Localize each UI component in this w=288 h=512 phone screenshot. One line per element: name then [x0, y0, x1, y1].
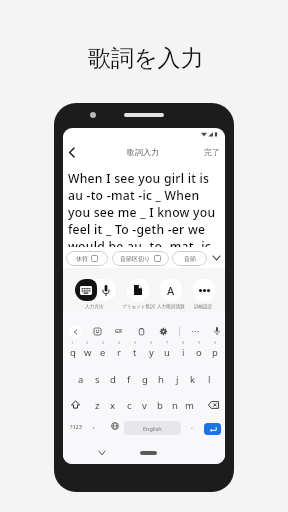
button[interactable]: 音節区切り [112, 251, 169, 266]
button[interactable]: 完了 [199, 143, 225, 161]
button[interactable]: Keyboard input [75, 279, 97, 301]
button[interactable]: m [182, 396, 197, 414]
button[interactable]: b [152, 396, 167, 414]
staticText: j [176, 373, 179, 386]
staticText: 6 [150, 340, 153, 345]
button[interactable]: l [201, 370, 217, 388]
button[interactable]: Enter [204, 423, 221, 435]
staticText: t [133, 346, 137, 359]
button[interactable]: k [185, 370, 201, 388]
staticText: k [190, 373, 196, 386]
staticText: 詳細設定 [194, 304, 213, 310]
staticText: 8 [182, 340, 185, 345]
staticText: A [167, 283, 175, 298]
button[interactable]: 1 [65, 340, 80, 361]
button[interactable]: 8 [175, 340, 191, 361]
button[interactable]: GIF [113, 326, 125, 336]
staticText: 3 [102, 340, 105, 345]
staticText: 2 [86, 340, 89, 345]
button[interactable]: 5 [127, 340, 143, 361]
button[interactable]: g [137, 370, 153, 388]
staticText: 入力歌詞清源 [157, 304, 185, 310]
staticText: l [208, 373, 211, 386]
button[interactable]: . [187, 420, 197, 434]
button[interactable]: j [169, 370, 185, 388]
button[interactable]: , [88, 420, 99, 432]
staticText: h [158, 373, 164, 386]
button[interactable]: English [124, 421, 181, 435]
button[interactable]: 休符 [66, 251, 108, 266]
staticText: a [78, 373, 84, 386]
button[interactable]: x [105, 396, 121, 414]
button[interactable]: 7 [159, 340, 175, 361]
button[interactable]: Change language [109, 420, 120, 432]
staticText: 完了 [204, 147, 220, 157]
button[interactable]: z [89, 396, 105, 414]
staticText: r [117, 346, 121, 359]
staticText: , [93, 421, 95, 431]
button[interactable]: 詳細設定 [193, 279, 215, 301]
button[interactable]: 2 [80, 340, 95, 361]
button[interactable]: Clipboard [135, 325, 148, 338]
button[interactable]: 音節 [172, 251, 207, 266]
staticText: 1 [71, 340, 74, 345]
staticText: 4 [118, 340, 121, 345]
staticText: 休符 [76, 255, 88, 263]
staticText: b [157, 399, 163, 412]
button[interactable]: Shift [69, 398, 82, 411]
button[interactable]: Settings [157, 325, 170, 338]
button[interactable]: Expand options [209, 251, 223, 265]
button[interactable]: Close toolbar [69, 325, 82, 338]
button[interactable]: ?123 [67, 420, 84, 432]
button[interactable]: 入力歌詞清源 [160, 279, 182, 301]
staticText: e [100, 346, 106, 359]
button[interactable]: h [153, 370, 169, 388]
staticText: g [142, 373, 148, 386]
staticText: z [95, 399, 100, 412]
staticText: English [143, 425, 162, 432]
staticText: c [127, 399, 132, 412]
staticText: s [95, 373, 100, 386]
button[interactable]: d [105, 370, 121, 388]
staticText: 歌詞入力 [127, 147, 159, 157]
button[interactable]: Back [63, 143, 81, 161]
button[interactable]: Voice typing [211, 325, 223, 337]
button[interactable]: Hide keyboard [95, 446, 108, 459]
button[interactable]: f [121, 370, 137, 388]
button[interactable]: Stickers [91, 325, 104, 338]
staticText: w [84, 346, 92, 359]
button[interactable]: 9 [191, 340, 207, 361]
staticText: i [182, 346, 185, 359]
button[interactable]: 4 [111, 340, 127, 361]
button[interactable]: プリセット歌詞 [127, 279, 149, 301]
staticText: d [110, 373, 116, 386]
staticText: v [142, 399, 147, 412]
staticText: 音節 [184, 255, 196, 263]
button[interactable]: Voice input [97, 279, 115, 301]
staticText: p [212, 346, 218, 359]
staticText: 9 [198, 340, 201, 345]
button[interactable]: a [72, 370, 89, 388]
button[interactable]: Backspace [206, 398, 220, 412]
staticText: When I see you girl it is au -to -mat -i… [68, 170, 222, 247]
staticText: GIF [115, 328, 123, 334]
staticText: 7 [166, 340, 169, 345]
staticText: f [127, 373, 131, 386]
button[interactable]: n [167, 396, 182, 414]
staticText: ?123 [70, 423, 82, 430]
staticText: 5 [134, 340, 137, 345]
button[interactable]: s [89, 370, 105, 388]
staticText: n [172, 399, 178, 412]
button[interactable]: 6 [143, 340, 159, 361]
button[interactable]: More options [189, 325, 202, 338]
button[interactable]: v [137, 396, 152, 414]
staticText: プリセット歌詞 [122, 304, 155, 310]
staticText: 0 [214, 340, 217, 345]
staticText: 歌詞を入力 [88, 44, 204, 73]
staticText: 音節区切り [120, 255, 151, 263]
button[interactable]: 0 [207, 340, 223, 361]
staticText: u [164, 346, 170, 359]
button[interactable]: c [121, 396, 137, 414]
button[interactable]: 3 [95, 340, 111, 361]
staticText: . [191, 422, 193, 432]
